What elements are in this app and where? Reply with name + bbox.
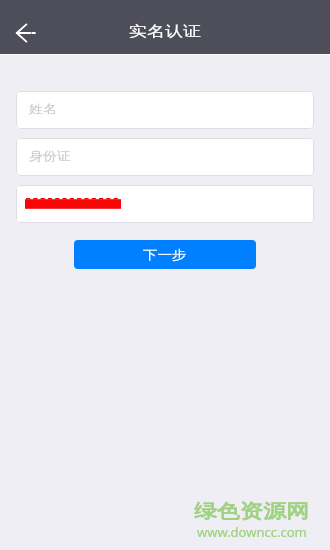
button[interactable]: 下一步: [74, 240, 256, 269]
staticText: 绿色资源网: [194, 499, 309, 524]
button[interactable]: 身份证: [16, 138, 314, 176]
button[interactable]: 姓名: [16, 91, 314, 129]
button[interactable]: [16, 185, 314, 223]
button[interactable]: Back: [0, 1, 52, 53]
staticText: 下一步: [143, 247, 187, 263]
staticText: 实名认证: [129, 22, 201, 41]
staticText: 姓名: [29, 102, 57, 118]
staticText: 身份证: [29, 149, 71, 165]
staticText: www.downcc.com: [197, 523, 307, 541]
